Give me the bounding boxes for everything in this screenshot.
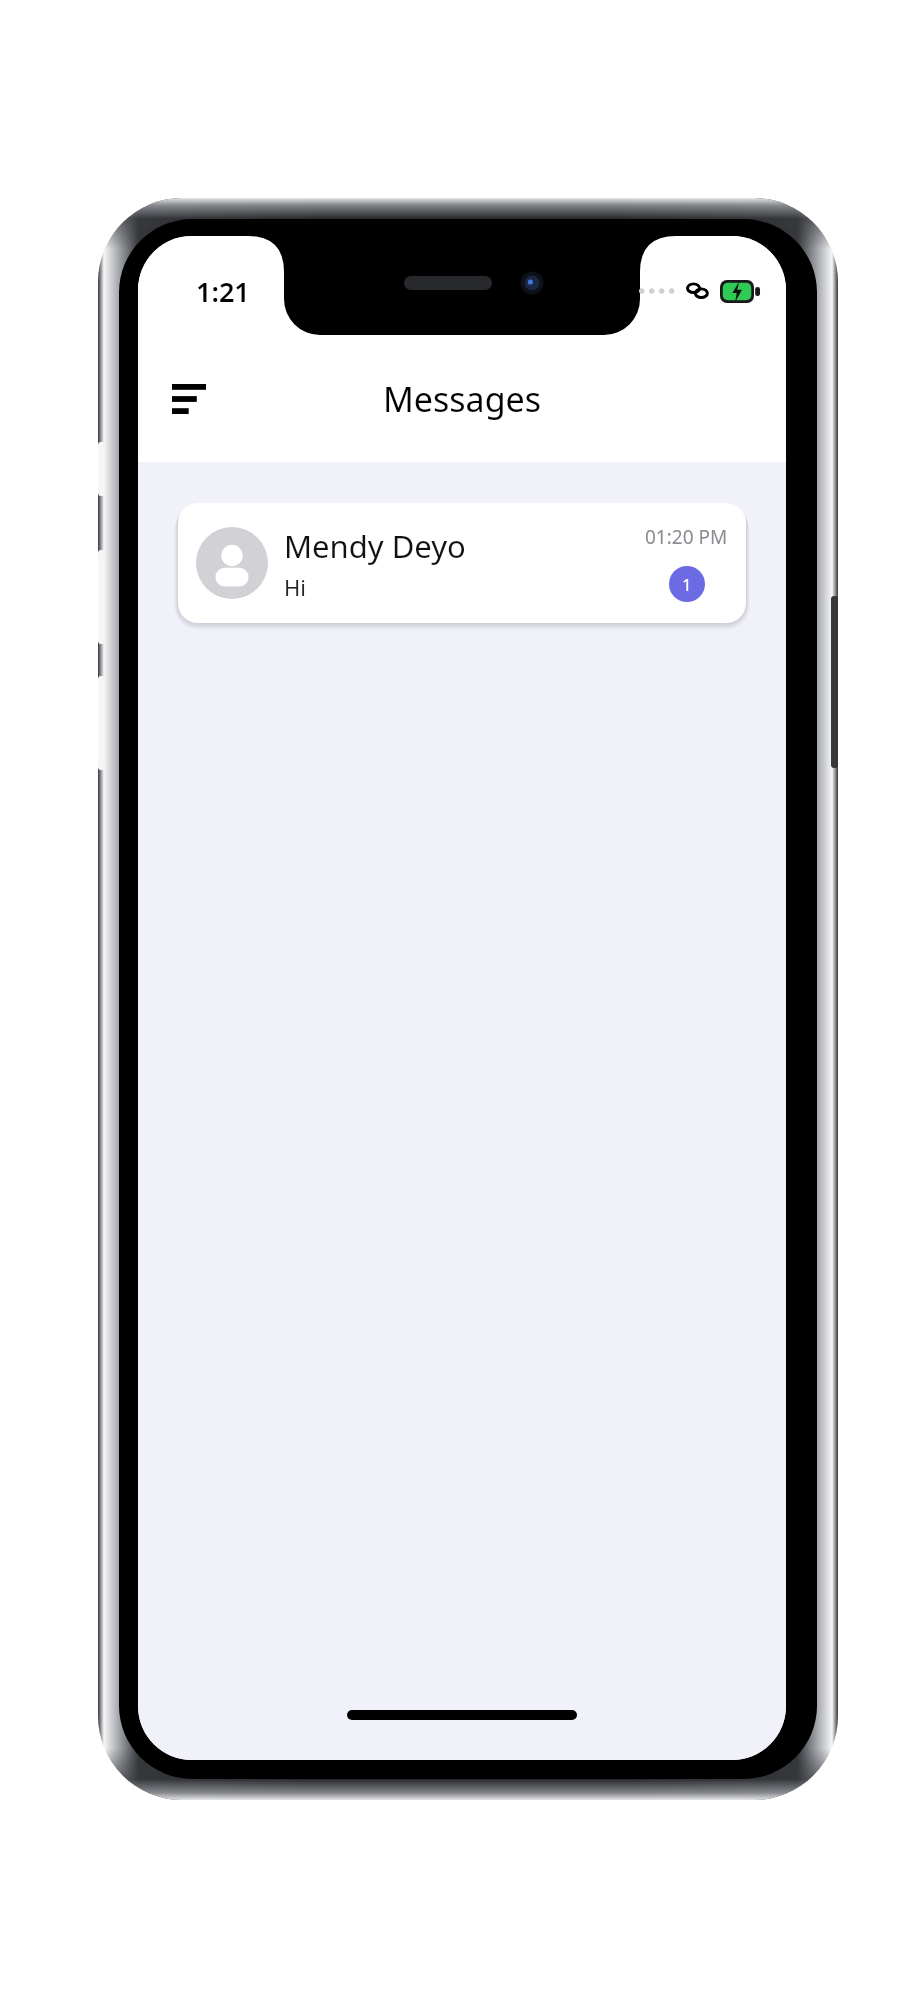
staticText: Messages <box>138 376 786 422</box>
staticText: 1 <box>682 573 692 596</box>
staticText: 01:20 PM <box>645 524 728 550</box>
button[interactable]: Mendy Deyo <box>178 503 746 623</box>
button[interactable]: Menu <box>156 366 222 432</box>
staticText: Mendy Deyo <box>284 525 466 567</box>
staticText: Hi <box>284 572 306 602</box>
staticText: 1:21 <box>196 273 250 310</box>
